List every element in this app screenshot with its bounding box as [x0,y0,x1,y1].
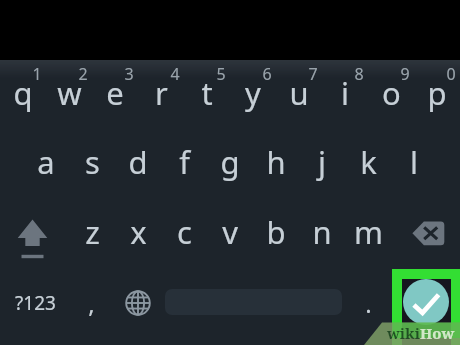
staticText: , [88,287,95,320]
button[interactable]: 4 [164,63,186,85]
button[interactable]: r [138,72,184,114]
button[interactable]: Change language [117,282,158,323]
staticText: u [289,72,309,114]
button[interactable]: 5 [210,63,232,85]
button[interactable]: 2 [72,63,94,85]
staticText: k [360,141,377,183]
staticText: ?123 [15,290,56,316]
button[interactable]: f [161,141,207,183]
staticText: h [266,141,286,183]
staticText: . [365,287,372,320]
button[interactable]: 6 [256,63,278,85]
staticText: f [179,141,190,183]
staticText: 3 [124,63,134,85]
staticText: j [318,141,326,183]
staticText: c [177,211,192,253]
staticText: How [420,323,455,343]
staticText: wiki [387,323,420,343]
staticText: q [13,72,33,114]
button[interactable]: 0 [440,63,460,85]
button[interactable]: w [46,72,92,114]
button[interactable]: l [391,141,437,183]
button[interactable]: p [414,72,460,114]
button[interactable]: . [352,287,384,320]
staticText: 1 [32,63,42,85]
button[interactable]: x [115,211,161,253]
button[interactable]: j [299,141,345,183]
button[interactable]: 1 [26,63,48,85]
button[interactable]: q [0,72,46,114]
staticText: o [382,72,401,114]
button[interactable]: i [322,72,368,114]
button[interactable]: 9 [394,63,416,85]
staticText: b [266,211,286,253]
button[interactable]: t [184,72,230,114]
button[interactable]: ?123 [3,290,67,316]
staticText: n [312,211,332,253]
staticText: 8 [354,63,364,85]
button[interactable]: a [23,141,69,183]
staticText: 5 [216,63,226,85]
staticText: 7 [308,63,318,85]
button[interactable]: Backspace [406,216,454,252]
button[interactable]: e [92,72,138,114]
button[interactable]: m [345,211,391,253]
staticText: m [354,211,383,253]
staticText: 6 [262,63,272,85]
staticText: x [130,211,147,253]
staticText: p [427,72,447,114]
staticText: v [222,211,238,253]
button[interactable]: g [207,141,253,183]
button[interactable]: c [161,211,207,253]
staticText: 9 [400,63,410,85]
button[interactable]: u [276,72,322,114]
staticText: 0 [446,63,456,85]
staticText: t [201,72,213,114]
button[interactable]: o [368,72,414,114]
button[interactable]: d [115,141,161,183]
staticText: 4 [170,63,180,85]
staticText: s [85,141,100,183]
button[interactable]: n [299,211,345,253]
staticText: r [155,72,168,114]
button[interactable]: h [253,141,299,183]
staticText: e [106,72,124,114]
staticText: g [220,141,240,183]
button[interactable]: k [345,141,391,183]
button[interactable]: 7 [302,63,324,85]
staticText: d [128,141,148,183]
button[interactable]: s [69,141,115,183]
button[interactable]: v [207,211,253,253]
button[interactable]: 8 [348,63,370,85]
button[interactable]: Enter [403,279,449,325]
staticText: y [245,72,261,114]
staticText: z [85,211,100,253]
staticText: l [410,141,418,183]
button[interactable]: Shift caps lock [10,212,56,262]
staticText: 2 [78,63,88,85]
staticText: a [37,141,55,183]
button[interactable]: y [230,72,276,114]
staticText: w [57,72,82,114]
button[interactable]: b [253,211,299,253]
button[interactable]: z [69,211,115,253]
staticText: i [341,72,349,114]
button[interactable]: 3 [118,63,140,85]
button[interactable]: , [71,287,111,320]
